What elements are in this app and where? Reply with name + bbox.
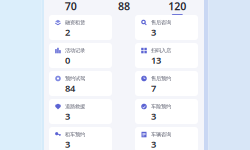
staticText: 3 bbox=[151, 110, 156, 122]
staticText: 70 bbox=[65, 0, 77, 13]
staticText: 0 bbox=[65, 54, 70, 66]
staticText: 融资租赁 bbox=[65, 19, 85, 26]
button[interactable]: 预约试驾 bbox=[49, 71, 112, 96]
staticText: 3 bbox=[65, 138, 70, 150]
staticText: 道路救援 bbox=[65, 103, 85, 110]
button[interactable]: 售后预约 bbox=[135, 71, 198, 96]
staticText: 2 bbox=[65, 26, 70, 38]
staticText: 7 bbox=[151, 82, 156, 94]
staticText: 车险预约 bbox=[151, 103, 171, 110]
staticText: 3 bbox=[65, 110, 70, 122]
staticText: 3 bbox=[151, 26, 156, 38]
staticText: 预约试驾 bbox=[65, 75, 85, 82]
button[interactable]: 售后咨询 bbox=[135, 15, 198, 40]
button[interactable]: 融资租赁 bbox=[49, 15, 112, 40]
button[interactable]: 扫码入店 bbox=[135, 43, 198, 68]
staticText: 13 bbox=[151, 54, 161, 66]
staticText: 售后咨询 bbox=[151, 19, 171, 26]
button[interactable]: 活动记录 bbox=[49, 43, 112, 68]
staticText: 扫码入店 bbox=[151, 47, 171, 54]
button[interactable]: 70 bbox=[44, 0, 97, 4]
staticText: 活动记录 bbox=[65, 47, 85, 54]
staticText: 88 bbox=[118, 0, 130, 13]
button[interactable]: 88 bbox=[97, 0, 151, 4]
staticText: 120 bbox=[168, 0, 186, 13]
button[interactable]: 道路救援 bbox=[49, 99, 112, 124]
button[interactable]: 车辆咨询 bbox=[135, 127, 198, 150]
button[interactable]: 120 bbox=[151, 0, 204, 4]
button[interactable]: 车险预约 bbox=[135, 99, 198, 124]
staticText: 租车预约 bbox=[65, 131, 85, 138]
staticText: 售后预约 bbox=[151, 75, 171, 82]
button[interactable]: 租车预约 bbox=[49, 127, 112, 150]
staticText: 车辆咨询 bbox=[151, 131, 171, 138]
staticText: 84 bbox=[65, 82, 75, 94]
staticText: 3 bbox=[151, 138, 156, 150]
